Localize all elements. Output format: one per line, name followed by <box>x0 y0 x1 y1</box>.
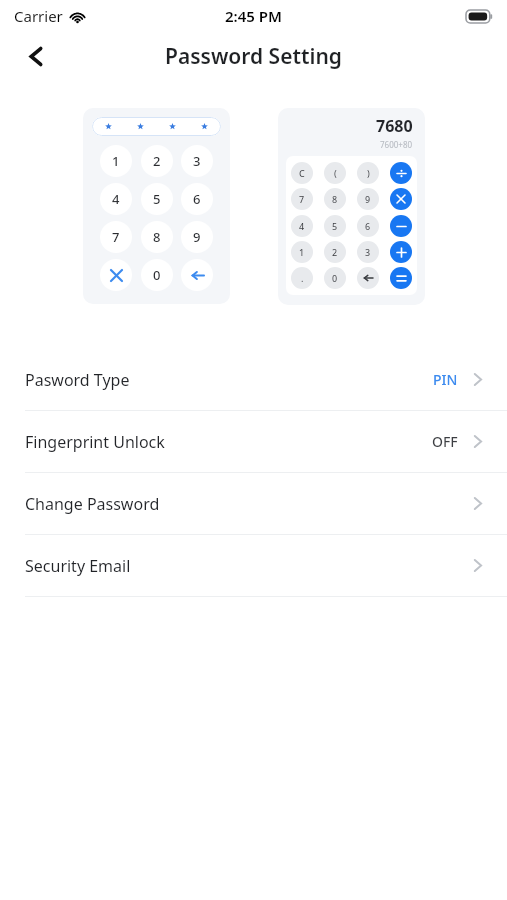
staticText: 0 <box>153 266 161 284</box>
staticText: Password Setting <box>165 42 342 71</box>
button[interactable]: Change Password <box>0 473 507 534</box>
staticText: 3 <box>365 246 371 258</box>
staticText: 6 <box>365 220 371 232</box>
button[interactable]: 7 <box>100 221 132 253</box>
staticText: 2 <box>332 246 338 258</box>
button[interactable] <box>100 259 132 291</box>
staticText: ( <box>334 167 337 179</box>
staticText: 7600+80 <box>380 139 413 150</box>
button[interactable]: 2 <box>141 145 173 177</box>
staticText: 9 <box>365 193 371 205</box>
button[interactable]: PIN keypad preview <box>83 108 230 304</box>
staticText: OFF <box>432 432 458 451</box>
button[interactable] <box>390 162 412 184</box>
button[interactable]: 2 <box>324 241 346 263</box>
staticText: PIN <box>433 370 458 389</box>
button[interactable]: 1 <box>291 241 313 263</box>
staticText: 5 <box>332 220 338 232</box>
button[interactable]: 4 <box>291 215 313 237</box>
staticText: 5 <box>153 190 161 208</box>
button[interactable]: 7 <box>291 188 313 210</box>
staticText: 4 <box>112 190 120 208</box>
staticText: 7680 <box>376 115 413 137</box>
staticText: 7 <box>112 228 120 246</box>
button[interactable] <box>390 215 412 237</box>
staticText: 8 <box>153 228 161 246</box>
button[interactable]: . <box>291 267 313 289</box>
button[interactable]: 8 <box>141 221 173 253</box>
button[interactable]: Calculator password preview <box>278 108 425 305</box>
button[interactable]: 8 <box>324 188 346 210</box>
button[interactable] <box>390 241 412 263</box>
staticText: 2 <box>153 152 161 170</box>
staticText: 3 <box>193 152 201 170</box>
button[interactable]: ( <box>324 162 346 184</box>
staticText: 8 <box>332 193 338 205</box>
button[interactable]: Pasword Type <box>0 349 507 410</box>
staticText: 4 <box>299 220 305 232</box>
button[interactable]: 9 <box>181 221 213 253</box>
button[interactable] <box>390 188 412 210</box>
button[interactable]: Security Email <box>0 535 507 596</box>
staticText: . <box>301 272 304 284</box>
button[interactable]: 6 <box>181 183 213 215</box>
button[interactable]: 6 <box>357 215 379 237</box>
staticText: 9 <box>193 228 201 246</box>
button[interactable]: 0 <box>141 259 173 291</box>
staticText: Fingerprint Unlock <box>25 431 432 453</box>
staticText: 1 <box>299 246 305 258</box>
staticText: C <box>299 167 305 179</box>
button[interactable]: 3 <box>357 241 379 263</box>
staticText: 6 <box>193 190 201 208</box>
button[interactable]: 9 <box>357 188 379 210</box>
staticText: Carrier <box>14 6 63 26</box>
staticText: 2:45 PM <box>225 6 282 26</box>
staticText: 1 <box>112 152 120 170</box>
button[interactable]: 0 <box>324 267 346 289</box>
staticText: Pasword Type <box>25 369 433 391</box>
button[interactable]: 5 <box>141 183 173 215</box>
staticText: Security Email <box>25 555 470 577</box>
button[interactable] <box>181 259 213 291</box>
button[interactable]: 5 <box>324 215 346 237</box>
button[interactable]: C <box>291 162 313 184</box>
button[interactable] <box>390 267 412 289</box>
button[interactable]: 1 <box>100 145 132 177</box>
button[interactable]: ) <box>357 162 379 184</box>
button[interactable]: Fingerprint Unlock <box>0 411 507 472</box>
button[interactable]: 3 <box>181 145 213 177</box>
button[interactable]: Back <box>16 36 56 76</box>
staticText: 0 <box>332 272 338 284</box>
staticText: Change Password <box>25 493 470 515</box>
button[interactable] <box>357 267 379 289</box>
staticText: ) <box>367 167 370 179</box>
button[interactable]: 4 <box>100 183 132 215</box>
staticText: 7 <box>299 193 305 205</box>
